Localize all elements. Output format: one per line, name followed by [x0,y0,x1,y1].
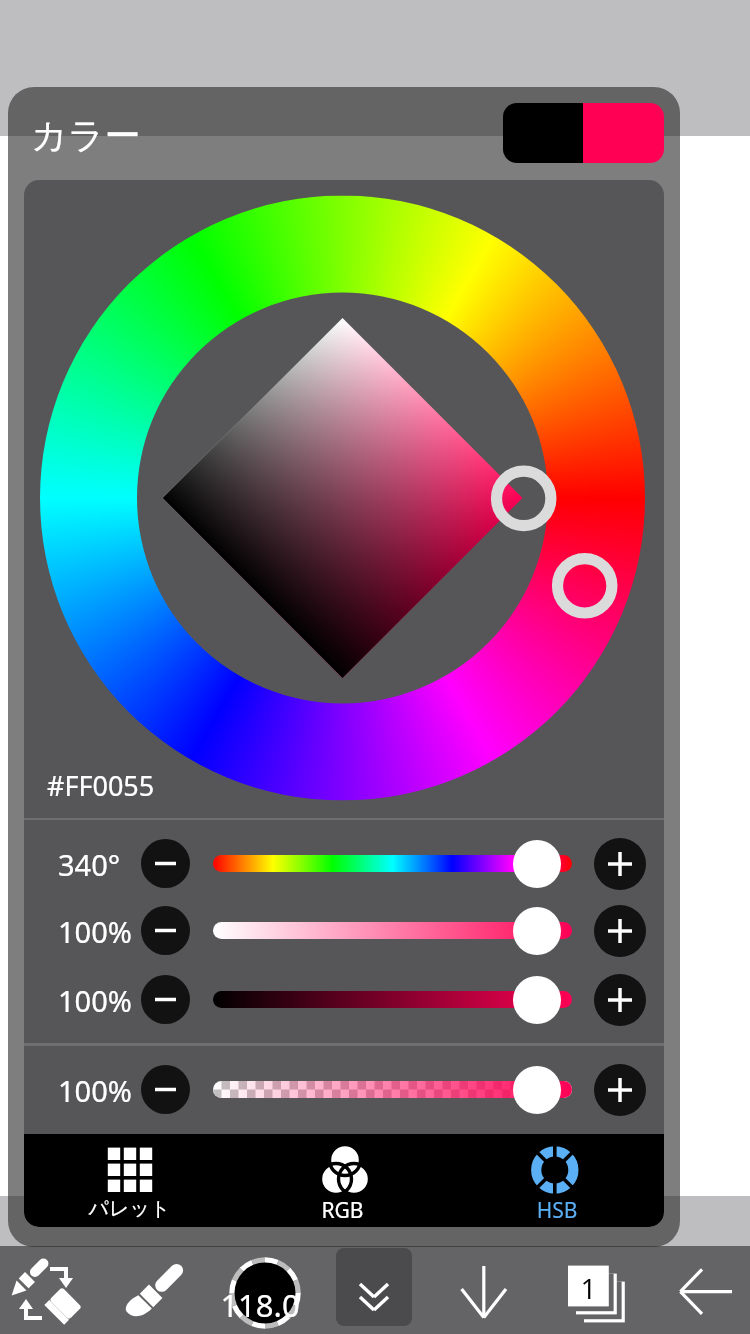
staticText: 100% [58,981,132,1020]
staticText: カラー [31,113,141,158]
button[interactable]: Back [650,1247,750,1334]
button[interactable]: パレット [24,1134,237,1227]
staticText: #FF0055 [47,767,155,804]
button[interactable]: 100% slider [213,906,572,955]
staticText: 100% [58,1071,132,1110]
button[interactable]: Brush [110,1247,220,1334]
button[interactable]: 100% slider [213,975,572,1024]
button[interactable]: 100% thumb [513,907,561,955]
button[interactable]: 100% thumb [513,976,561,1024]
button[interactable]: Decrease [141,839,190,888]
staticText: HSB [450,1196,664,1225]
button[interactable]: 100% slider [213,1065,572,1114]
button[interactable]: Merge down [434,1247,534,1334]
button[interactable]: 340° thumb [513,840,561,888]
button[interactable]: Brush size 118.0 [229,1257,301,1329]
button[interactable]: RGB [237,1134,450,1227]
button[interactable]: Decrease [141,906,190,955]
button[interactable]: Switch pen and eraser [0,1247,110,1334]
button[interactable]: Increase [594,905,646,957]
button[interactable]: 100% thumb [513,1066,561,1114]
button[interactable]: Decrease [141,1065,190,1114]
staticText: パレット [24,1196,236,1221]
button[interactable]: 340° slider [213,839,572,888]
staticText: 118.0 [210,1284,310,1326]
staticText: RGB [236,1196,449,1225]
button[interactable]: Colour wheel [24,180,664,819]
button[interactable]: Decrease [141,975,190,1024]
staticText: 1 [568,1269,609,1307]
button[interactable]: Collapse toolbar [336,1248,412,1326]
button[interactable]: Increase [594,974,646,1026]
button[interactable]: Layers [540,1247,640,1334]
button[interactable]: Current colour [503,103,664,163]
button[interactable]: Increase [594,838,646,890]
button[interactable]: HSB [450,1134,664,1227]
staticText: 100% [58,912,132,951]
staticText: 340° [58,845,121,884]
button[interactable]: Increase [594,1064,646,1116]
